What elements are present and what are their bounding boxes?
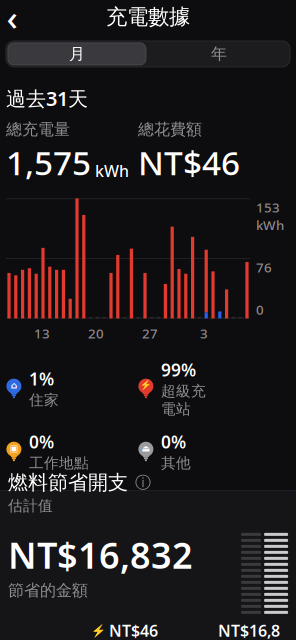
button[interactable]: 年 (148, 41, 290, 67)
staticText: ⌂ (10, 380, 17, 390)
staticText: NT$46 (138, 140, 240, 184)
staticText: 153 (256, 198, 280, 216)
staticText: kWh (256, 216, 284, 234)
staticText: 其他 (161, 454, 191, 472)
staticText: ⚡ (140, 380, 152, 390)
staticText: 充電數據 (106, 4, 190, 30)
staticText: 年 (211, 44, 227, 64)
staticText: 27 (142, 324, 158, 342)
staticText: 總花費額 (138, 119, 202, 139)
staticText: 76 (256, 258, 272, 276)
staticText: 超級充電站 (161, 382, 206, 418)
staticText: ▣ (9, 443, 18, 453)
staticText: ⏏ (141, 443, 150, 453)
staticText: 20 (88, 324, 104, 342)
staticText: NT$46 (109, 620, 158, 640)
button[interactable]: About fuel savings (134, 474, 152, 492)
staticText: 月 (69, 44, 85, 64)
staticText: 3 (200, 324, 208, 342)
staticText: 13 (34, 324, 50, 342)
staticText: 住家 (29, 391, 59, 409)
staticText: NT$16,878 (218, 620, 280, 640)
staticText: 過去31天 (6, 85, 88, 112)
staticText: 1,575 (6, 140, 91, 184)
staticText: 節省的金額 (8, 581, 88, 600)
staticText: 燃料節省開支 (8, 470, 128, 495)
staticText: 估計值 (8, 497, 53, 515)
staticText: 1% (29, 367, 54, 390)
button[interactable]: 月 (6, 41, 148, 67)
staticText: 0 (256, 301, 264, 318)
staticText: 總充電量 (6, 119, 70, 139)
staticText: 工作地點 (29, 454, 89, 472)
staticText: ‹ (6, 0, 17, 40)
staticText: 99% (161, 358, 196, 381)
staticText: 0% (161, 430, 186, 453)
staticText: 0% (29, 430, 54, 453)
staticText: ⚡ (91, 624, 106, 637)
staticText: ⓘ (135, 473, 151, 492)
button[interactable]: Back (0, 0, 34, 35)
staticText: NT$16,832 (8, 531, 193, 579)
staticText: kWh (95, 160, 129, 181)
